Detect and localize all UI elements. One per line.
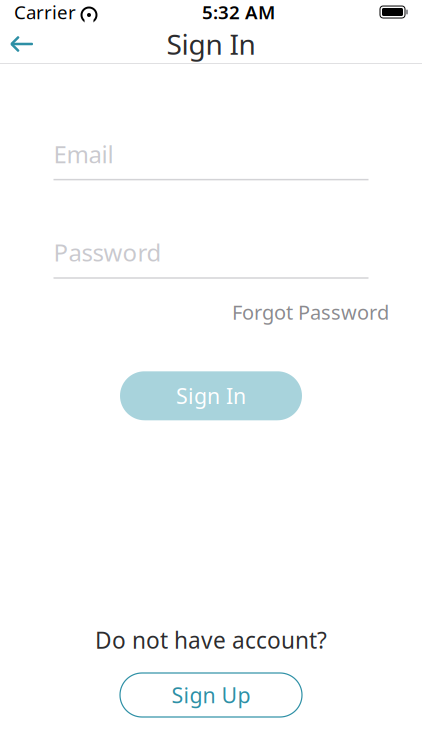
staticText: Forgot Password (232, 299, 389, 325)
button[interactable]: Sign Up (120, 673, 302, 717)
staticText: Carrier (14, 0, 76, 24)
staticText: Do not have account? (95, 625, 327, 655)
staticText: Sign In (176, 382, 246, 410)
staticText: Sign Up (171, 681, 250, 709)
staticText: 5:32 AM (202, 0, 275, 24)
button[interactable]: Back (0, 24, 44, 64)
staticText: Email (53, 138, 113, 170)
button[interactable]: Sign In (120, 371, 302, 420)
button[interactable]: Forgot Password (232, 293, 389, 331)
staticText: Sign In (166, 25, 255, 63)
staticText: Password (53, 236, 161, 268)
